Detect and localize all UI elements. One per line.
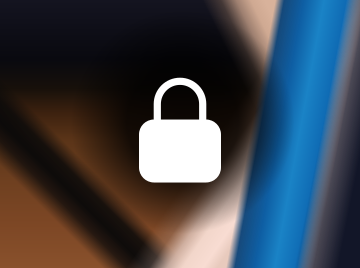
button[interactable]: Content hidden — tap to unlock xyxy=(0,0,360,268)
